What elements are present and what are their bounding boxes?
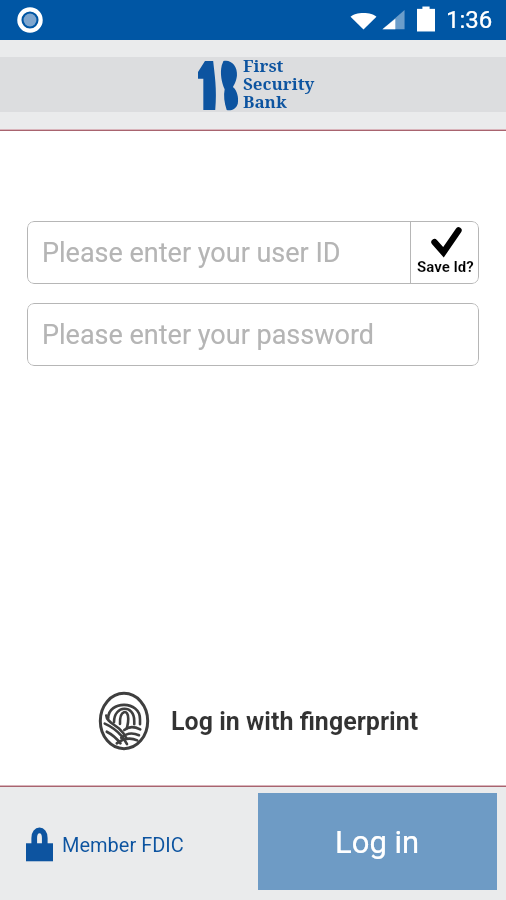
staticText: Log in <box>335 824 420 860</box>
staticText: First Security Bank <box>243 54 315 113</box>
button[interactable]: Please enter your password <box>27 303 479 366</box>
button[interactable]: Please enter your user ID <box>27 221 410 284</box>
staticText: Save Id? <box>417 258 474 276</box>
button[interactable]: Log in <box>258 793 497 890</box>
staticText: Member FDIC <box>62 833 184 856</box>
button[interactable]: Log in with fingerprint <box>99 692 419 750</box>
other: Notification <box>16 6 44 34</box>
staticText: Log in with fingerprint <box>171 707 419 736</box>
button[interactable]: Member FDIC <box>26 826 184 862</box>
button[interactable]: Save Id? <box>411 221 479 284</box>
staticText: 1:36 <box>446 6 493 34</box>
staticText: Please enter your password <box>42 319 375 351</box>
staticText: Please enter your user ID <box>42 237 341 269</box>
